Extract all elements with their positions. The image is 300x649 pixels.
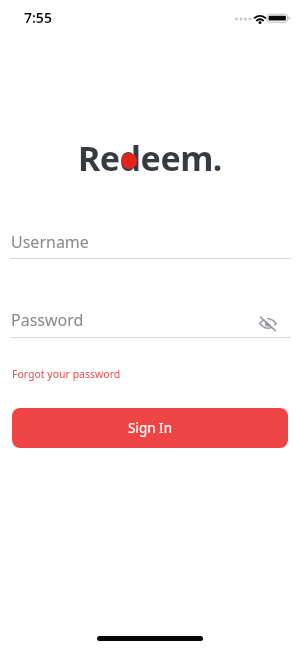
staticText: Forgot your password [12, 367, 121, 381]
staticText: Sign In [128, 419, 172, 437]
staticText: 7:55 [24, 8, 52, 27]
button[interactable]: Forgot your password [12, 367, 121, 381]
button[interactable] [253, 308, 281, 336]
staticText: Password [11, 309, 84, 331]
button[interactable]: Sign In [12, 408, 288, 448]
staticText: Username [11, 231, 89, 253]
staticText: Redeem. [78, 135, 222, 181]
